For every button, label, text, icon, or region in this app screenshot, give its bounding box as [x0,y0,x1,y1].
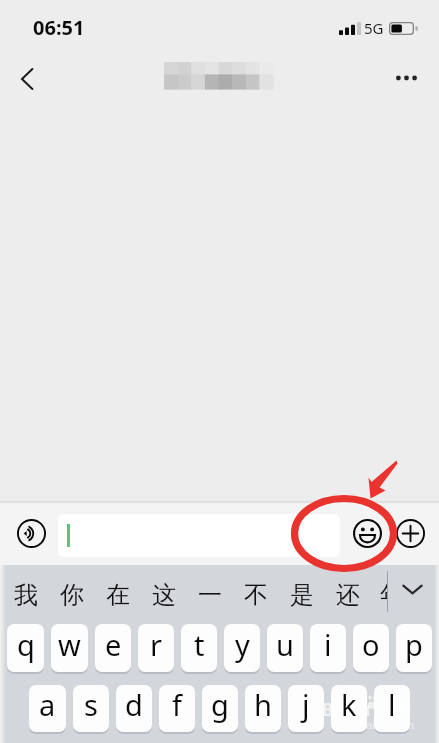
staticText: 年 [380,580,388,610]
button[interactable] [310,624,346,672]
button[interactable] [245,685,281,732]
button[interactable]: 这 [141,566,187,623]
staticText: g [211,685,229,724]
staticText: www.baidu.com [331,717,414,732]
staticText: 你 [60,580,84,610]
staticText: 是 [290,580,314,610]
staticText: h [254,685,272,724]
staticText: 5G [364,18,384,38]
staticText: e [105,625,122,664]
staticText: 一 [198,580,222,610]
staticText: Baidu [322,698,371,721]
button[interactable] [73,685,109,732]
staticText: l [388,685,396,724]
button[interactable] [181,624,217,672]
button[interactable] [396,624,432,672]
button[interactable]: 你 [49,566,95,623]
staticText: f [172,685,182,724]
button[interactable] [159,685,195,732]
button[interactable]: More options [384,56,428,100]
staticText: 在 [106,580,130,610]
button[interactable] [353,624,389,672]
button[interactable] [288,685,324,732]
button[interactable] [29,685,66,732]
staticText: r [150,625,162,664]
button[interactable]: 一 [187,566,233,623]
staticText: s [84,685,98,724]
staticText: a [39,685,56,724]
staticText: 不 [244,580,268,610]
staticText: y [235,625,250,664]
button[interactable] [138,624,174,672]
button[interactable]: 是 [279,566,325,623]
button[interactable]: More functions [388,511,432,555]
button[interactable]: Emoji [345,511,389,555]
button[interactable] [7,624,44,672]
staticText: 我 [14,580,38,610]
button[interactable]: 还 [325,566,371,623]
staticText: w [58,625,81,664]
button[interactable]: Hide keyboard [390,567,434,611]
button[interactable] [331,685,367,732]
button[interactable]: Voice input [9,511,53,555]
button[interactable] [202,685,238,732]
staticText: 这 [152,580,176,610]
staticText: t [194,625,205,664]
staticText: 还 [336,580,360,610]
button[interactable] [116,685,152,732]
staticText: d [125,685,143,724]
staticText: i [324,625,332,664]
staticText: 06:51 [33,14,85,41]
staticText: k [341,685,357,724]
button[interactable] [95,624,131,672]
button[interactable]: Back [5,57,49,101]
button[interactable]: 我 [3,566,49,623]
button[interactable] [267,624,303,672]
staticText: q [17,625,35,664]
staticText: p [405,625,423,664]
staticText: u [276,625,294,664]
button[interactable] [224,624,260,672]
button[interactable]: 年 [380,566,388,623]
button[interactable]: 在 [95,566,141,623]
staticText: 经验 [380,699,410,718]
staticText: j [302,685,310,724]
button[interactable] [374,685,410,732]
button[interactable] [51,624,88,672]
staticText: o [362,625,380,664]
button[interactable]: 不 [233,566,279,623]
button[interactable] [58,514,340,557]
